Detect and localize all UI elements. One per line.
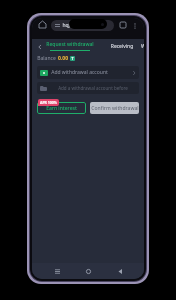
staticText: Request withdrawal [46, 41, 94, 48]
button[interactable]: Back [113, 264, 127, 278]
button[interactable]: hqj17... [51, 20, 114, 31]
staticText: Balance [37, 55, 56, 62]
button[interactable]: Request withdrawal [46, 41, 94, 51]
staticText: 0.00 [58, 55, 68, 62]
button[interactable]: Receiving account [103, 43, 141, 50]
staticText: Earn interest [46, 105, 77, 112]
staticText: Add a withdrawal account before withdraw… [50, 85, 136, 91]
staticText: T [71, 56, 74, 61]
button[interactable]: Add withdrawal account [37, 66, 139, 79]
staticText: hqj17... [62, 22, 80, 29]
button[interactable]: Recent apps [50, 264, 64, 278]
button[interactable]: Confirm withdrawal [90, 102, 139, 114]
button[interactable]: Home [36, 18, 49, 31]
button[interactable]: Home [81, 264, 95, 278]
staticText: Receiving account [103, 43, 141, 50]
staticText: APR 100% [40, 100, 57, 105]
button[interactable]: More options [129, 20, 140, 31]
button[interactable]: Tabs [116, 18, 129, 31]
button[interactable]: Back [35, 42, 44, 51]
staticText: Add withdrawal account [51, 69, 108, 76]
staticText: Confirm withdrawal [91, 105, 139, 112]
button[interactable]: Earn interest [37, 102, 86, 114]
